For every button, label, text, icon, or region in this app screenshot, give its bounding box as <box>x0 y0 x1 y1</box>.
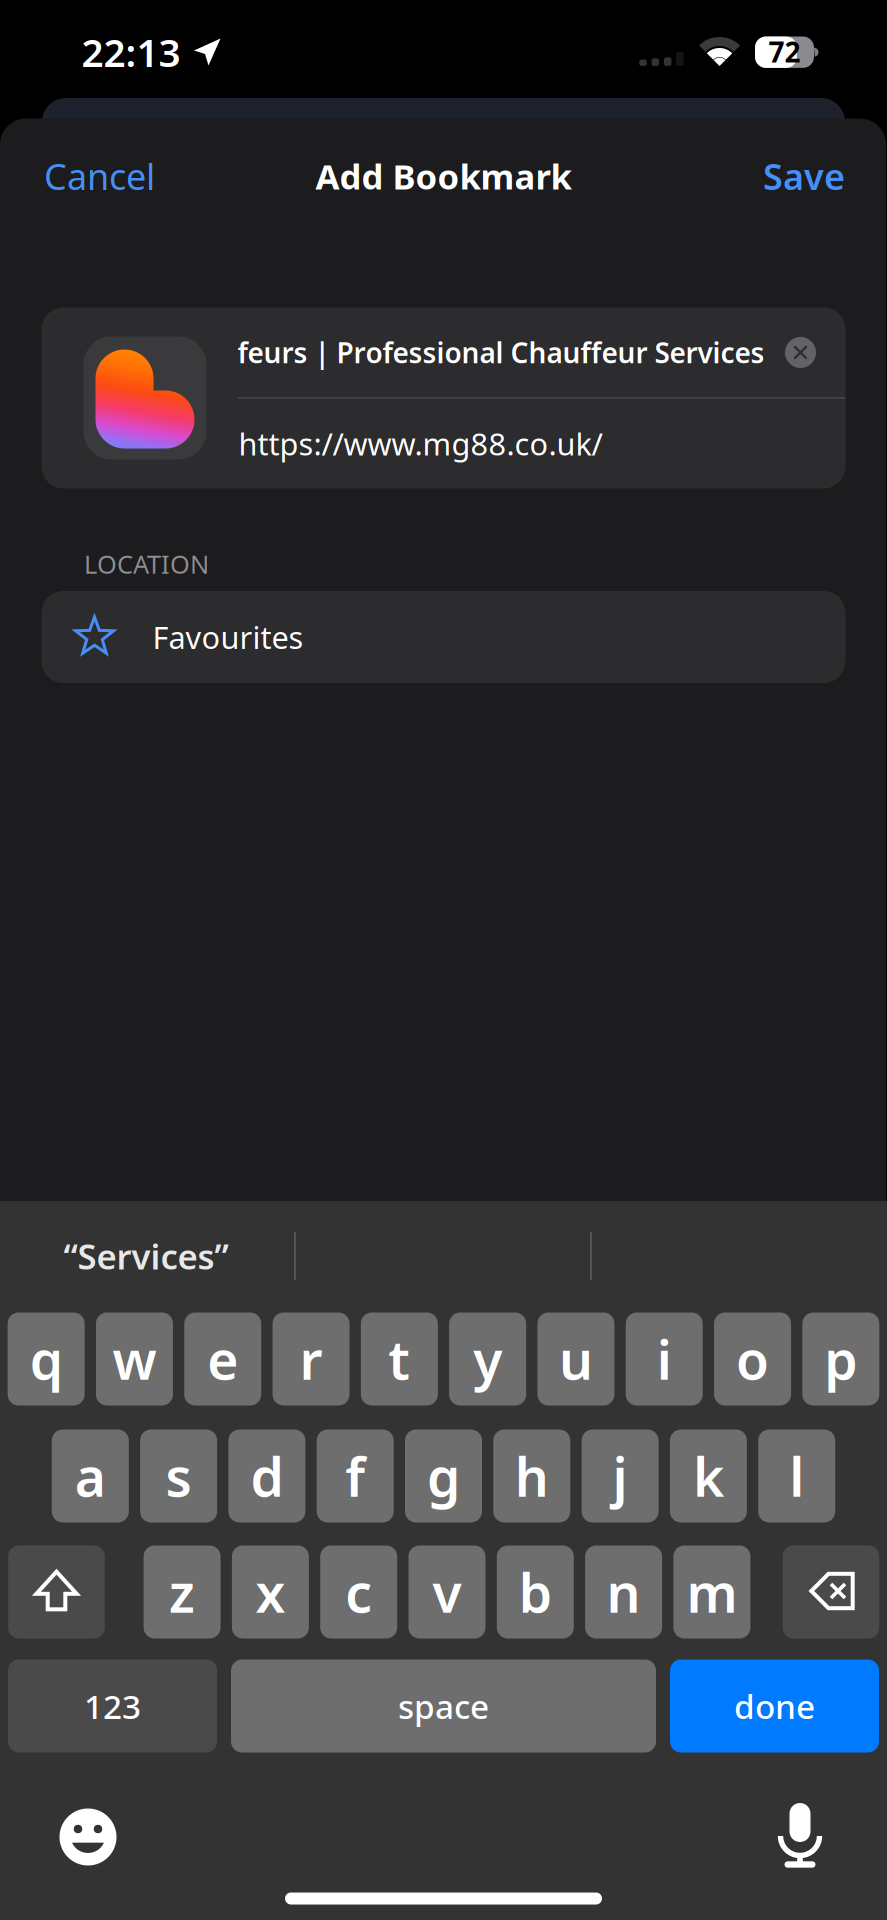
button[interactable]: Shift <box>8 1545 105 1639</box>
staticText: https://www.mg88.co.uk/ <box>238 423 602 464</box>
button[interactable]: p <box>802 1312 879 1405</box>
button[interactable]: b <box>497 1545 574 1638</box>
button[interactable]: Save <box>725 141 845 211</box>
button[interactable]: s <box>140 1429 217 1522</box>
button[interactable]: k <box>670 1429 747 1522</box>
button[interactable]: Dictation <box>757 1792 843 1878</box>
staticText: l <box>789 1441 804 1511</box>
button[interactable]: Delete <box>783 1545 879 1639</box>
button[interactable]: Cancel <box>44 141 204 211</box>
staticText: y <box>473 1324 502 1394</box>
button[interactable]: a <box>52 1429 129 1522</box>
button[interactable]: t <box>361 1312 438 1405</box>
staticText: h <box>515 1441 549 1511</box>
button[interactable]: c <box>320 1545 397 1638</box>
button[interactable]: u <box>537 1312 614 1405</box>
staticText: f <box>345 1441 365 1511</box>
button[interactable]: e <box>184 1312 261 1405</box>
button[interactable]: q <box>8 1312 85 1405</box>
staticText: q <box>30 1324 63 1394</box>
button[interactable]: x <box>232 1545 309 1638</box>
button[interactable]: v <box>408 1545 485 1638</box>
staticText: Cancel <box>44 152 155 200</box>
button[interactable]: Favourites <box>41 591 845 683</box>
button[interactable]: j <box>582 1429 659 1522</box>
button[interactable]: n <box>585 1545 662 1638</box>
button[interactable]: Emoji keyboard <box>45 1794 131 1880</box>
button[interactable]: r <box>272 1312 349 1405</box>
button[interactable]: w <box>96 1312 173 1405</box>
staticText: x <box>255 1557 285 1627</box>
staticText: v <box>432 1557 461 1627</box>
staticText: Favourites <box>152 617 303 657</box>
staticText: d <box>250 1441 283 1511</box>
staticText: p <box>824 1324 857 1394</box>
staticText: 22:13 <box>81 26 180 78</box>
button[interactable]: y <box>449 1312 526 1405</box>
staticText: m <box>686 1557 737 1627</box>
staticText: LOCATION <box>84 547 209 581</box>
button[interactable]: space <box>231 1659 656 1752</box>
button[interactable]: o <box>714 1312 791 1405</box>
button[interactable]: i <box>626 1312 703 1405</box>
button[interactable]: Clear text <box>785 337 816 368</box>
staticText: a <box>75 1441 106 1511</box>
staticText: o <box>736 1324 769 1394</box>
button[interactable]: m <box>673 1545 750 1638</box>
staticText: g <box>427 1441 460 1511</box>
staticText: b <box>519 1557 552 1627</box>
staticText: z <box>169 1557 195 1627</box>
staticText: n <box>607 1557 641 1627</box>
button[interactable]: h <box>493 1429 570 1522</box>
staticText: 123 <box>84 1684 141 1728</box>
staticText: feurs | Professional Chauffeur Services <box>237 334 764 371</box>
staticText: “Services” <box>63 1233 228 1279</box>
staticText: c <box>345 1557 372 1627</box>
staticText: r <box>299 1324 322 1394</box>
button[interactable]: done <box>670 1659 879 1752</box>
button[interactable]: 123 <box>8 1659 217 1752</box>
button[interactable]: z <box>144 1545 221 1638</box>
staticText: i <box>657 1324 672 1394</box>
staticText: e <box>207 1324 238 1394</box>
staticText: k <box>693 1441 724 1511</box>
button[interactable]: d <box>228 1429 305 1522</box>
staticText: done <box>734 1684 815 1728</box>
staticText: u <box>559 1324 593 1394</box>
staticText: t <box>388 1324 410 1394</box>
staticText: space <box>398 1684 489 1728</box>
staticText: 72 <box>768 33 800 70</box>
staticText: j <box>613 1441 628 1511</box>
staticText: s <box>166 1441 192 1511</box>
staticText: Save <box>763 152 845 200</box>
staticText: w <box>112 1324 156 1394</box>
button[interactable]: f <box>317 1429 394 1522</box>
button[interactable]: l <box>758 1429 835 1522</box>
staticText: Add Bookmark <box>315 153 571 199</box>
button[interactable]: g <box>405 1429 482 1522</box>
